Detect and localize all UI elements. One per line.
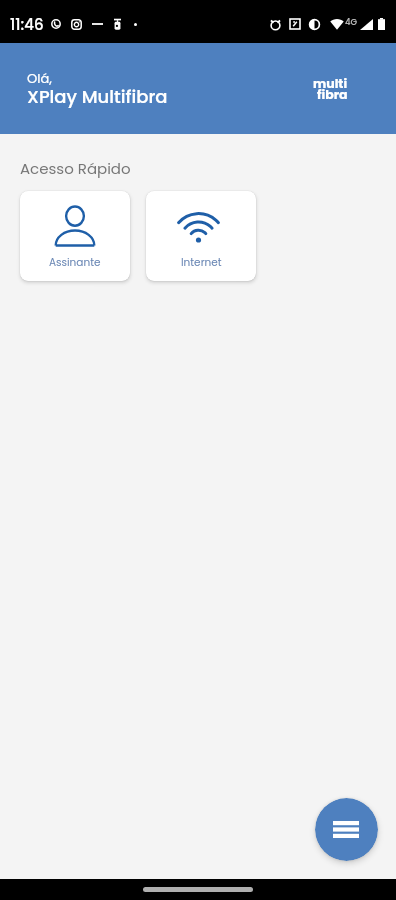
staticText: Acesso Rápido — [20, 158, 131, 179]
staticText: multi — [313, 75, 348, 92]
button[interactable]: Assinante — [20, 191, 130, 281]
staticText: Internet — [181, 255, 222, 270]
button[interactable]: Menu — [315, 798, 378, 861]
staticText: Olá, — [27, 69, 52, 87]
button[interactable]: Internet — [146, 191, 256, 281]
staticText: XPlay Multifibra — [27, 84, 168, 109]
staticText: Assinante — [49, 255, 101, 270]
staticText: 4G — [345, 16, 358, 28]
staticText: 11:46 — [10, 14, 44, 35]
staticText: fibra — [317, 86, 348, 103]
